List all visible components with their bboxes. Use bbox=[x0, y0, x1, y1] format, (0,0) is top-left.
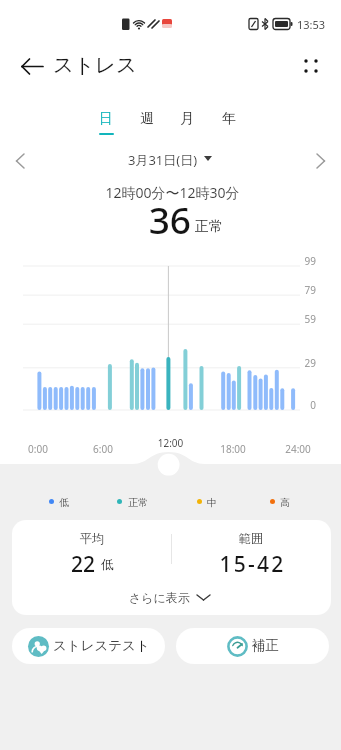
button[interactable]: さらに表示 bbox=[129, 587, 213, 607]
staticText: 正常 bbox=[128, 496, 148, 509]
staticText: 15-42 bbox=[200, 550, 305, 576]
button[interactable]: Previous day bbox=[6, 147, 34, 175]
button[interactable]: Back bbox=[13, 48, 50, 85]
staticText: 高 bbox=[280, 496, 290, 509]
button[interactable]: 3月31日(日) bbox=[120, 148, 215, 169]
staticText: 低 bbox=[59, 496, 69, 509]
staticText: 29 bbox=[296, 356, 316, 368]
staticText: 59 bbox=[296, 312, 316, 324]
staticText: 0 bbox=[296, 398, 316, 410]
staticText: 低 bbox=[101, 557, 114, 573]
staticText: 日 bbox=[99, 110, 113, 128]
button[interactable]: 週 bbox=[129, 107, 165, 139]
staticText: 79 bbox=[296, 283, 316, 295]
staticText: 36 bbox=[120, 194, 191, 234]
staticText: 年 bbox=[222, 110, 236, 128]
staticText: 0:00 bbox=[18, 442, 58, 456]
staticText: 6:00 bbox=[83, 442, 123, 456]
staticText: 補正 bbox=[252, 637, 279, 654]
staticText: さらに表示 bbox=[129, 590, 190, 605]
button[interactable]: ストレステスト bbox=[12, 628, 165, 664]
staticText: 13:53 bbox=[297, 17, 326, 32]
staticText: 24:00 bbox=[278, 442, 318, 456]
staticText: 正常 bbox=[195, 218, 223, 236]
staticText: 99 bbox=[296, 254, 316, 266]
staticText: 月 bbox=[180, 110, 194, 128]
staticText: 範囲 bbox=[211, 531, 291, 547]
staticText: 18:00 bbox=[213, 442, 253, 456]
button[interactable]: 日 bbox=[88, 107, 124, 139]
staticText: 週 bbox=[140, 110, 154, 128]
button[interactable]: 年 bbox=[211, 107, 247, 139]
staticText: 22 bbox=[23, 550, 95, 576]
staticText: 12時00分〜12時30分 bbox=[2, 183, 341, 750]
staticText: ストレス bbox=[53, 52, 137, 78]
staticText: 3月31日(日) bbox=[128, 151, 198, 169]
button[interactable]: 補正 bbox=[176, 628, 329, 664]
staticText: 平均 bbox=[52, 531, 132, 547]
staticText: 中 bbox=[207, 496, 217, 509]
staticText: ストレステスト bbox=[53, 637, 150, 654]
button[interactable]: 月 bbox=[169, 107, 205, 139]
button[interactable]: More options bbox=[294, 49, 328, 83]
staticText: 12:00 bbox=[148, 436, 193, 450]
button[interactable]: Next day bbox=[307, 147, 335, 175]
